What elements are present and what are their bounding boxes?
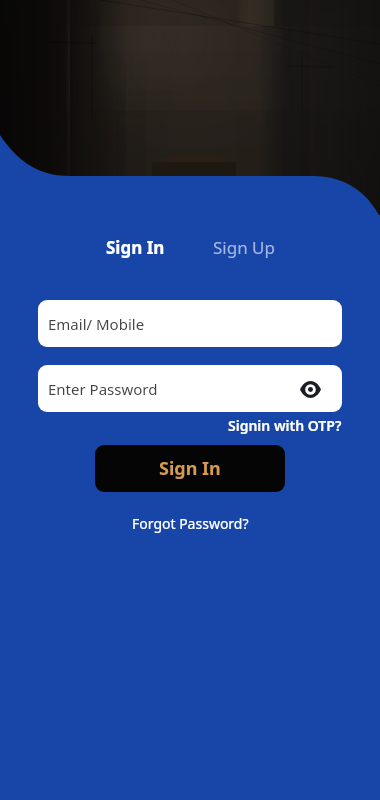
button[interactable]: Show password	[298, 377, 322, 401]
button[interactable]: Sign In	[100, 232, 171, 263]
button[interactable]: Signin with OTP?	[228, 416, 342, 435]
staticText: Email/ Mobile	[48, 314, 145, 334]
staticText: Sign In	[106, 236, 165, 259]
staticText: Sign Up	[213, 236, 275, 259]
staticText: Signin with OTP?	[228, 416, 342, 435]
staticText: Sign In	[159, 456, 221, 481]
button[interactable]: Sign Up	[207, 232, 281, 263]
button[interactable]: Sign In	[95, 445, 285, 492]
button[interactable]: Enter Password	[38, 365, 342, 412]
button[interactable]: Email/ Mobile	[38, 300, 342, 347]
button[interactable]: Forgot Password?	[128, 510, 253, 537]
staticText: Forgot Password?	[132, 514, 249, 533]
staticText: Enter Password	[48, 379, 158, 399]
